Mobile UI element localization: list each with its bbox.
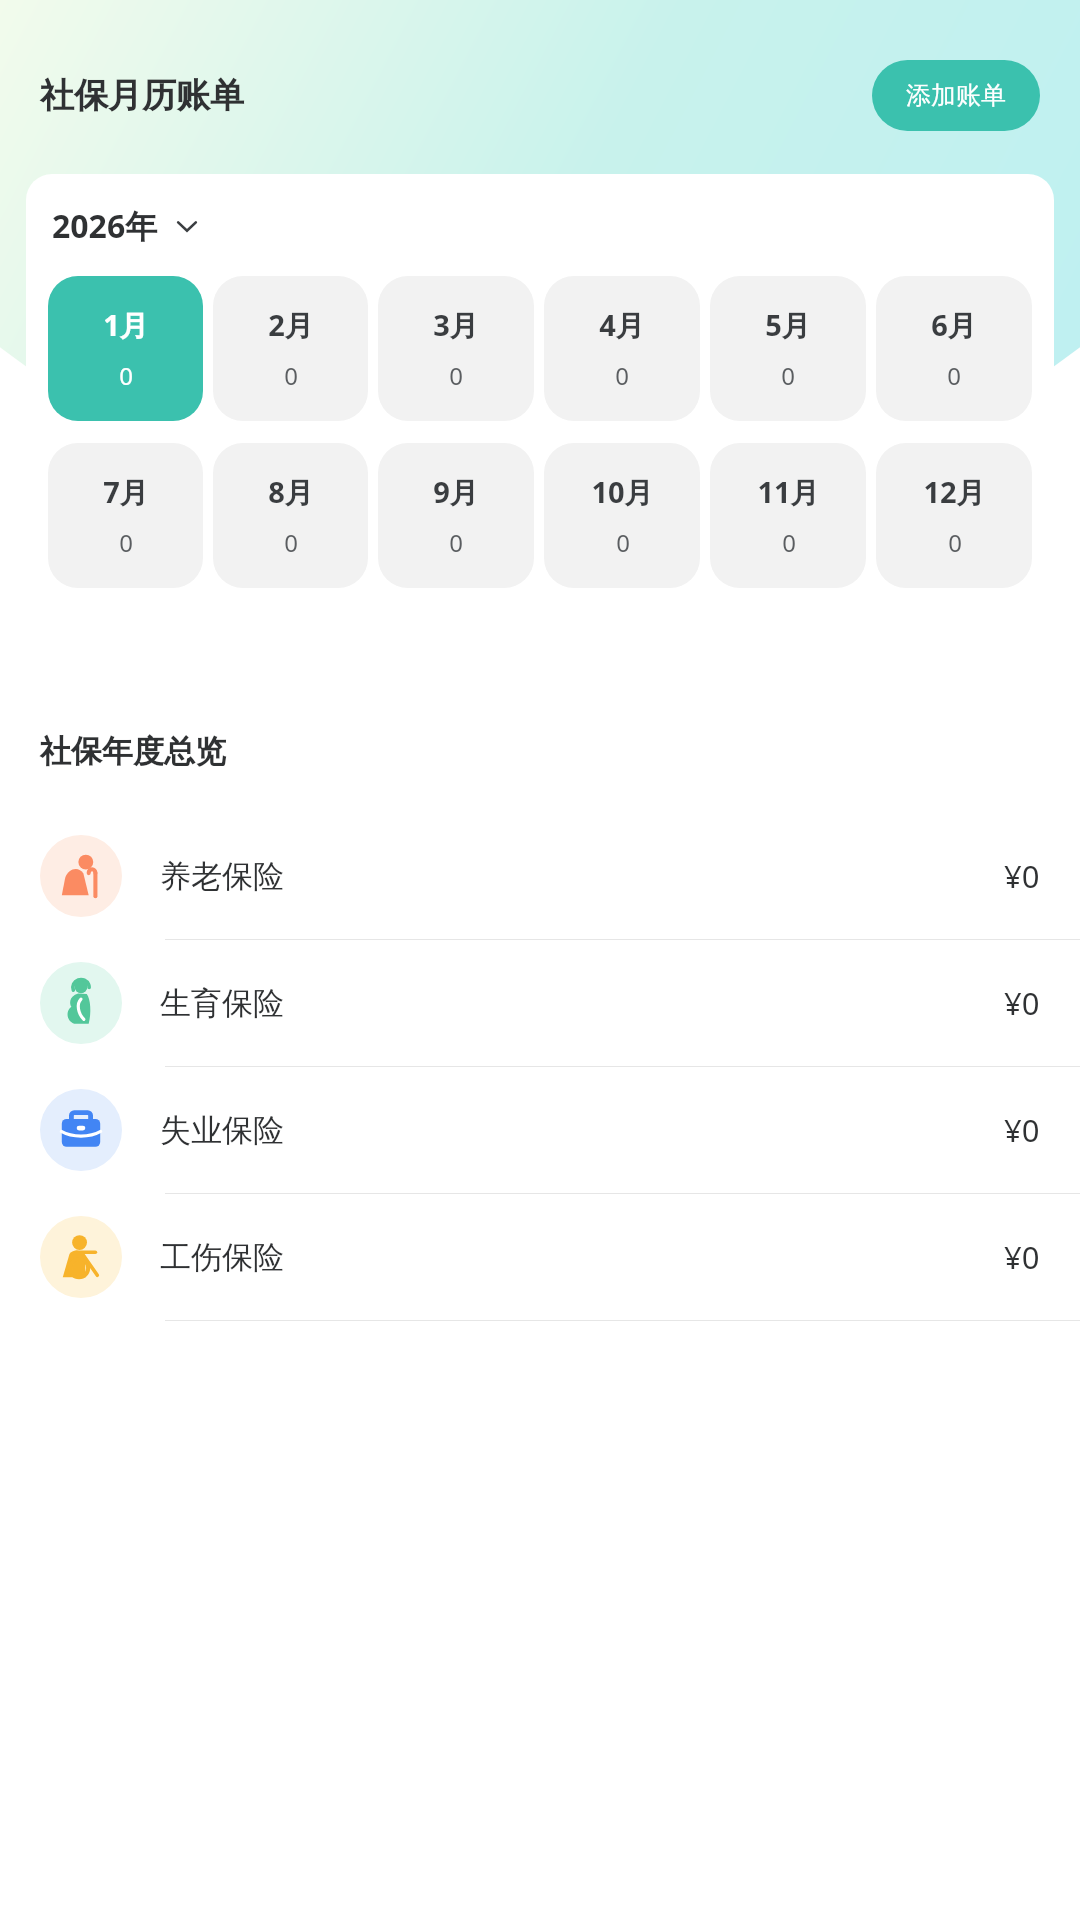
- staticText: 0: [782, 526, 796, 559]
- button[interactable]: 8月: [213, 443, 368, 588]
- staticText: 0: [948, 526, 962, 559]
- button[interactable]: 2026年: [48, 200, 204, 252]
- staticText: 生育保险: [160, 984, 284, 1023]
- button[interactable]: 养老保险: [0, 813, 1080, 939]
- staticText: 0: [449, 359, 463, 392]
- staticText: 0: [119, 526, 133, 559]
- staticText: 0: [615, 359, 629, 392]
- staticText: 工伤保险: [160, 1238, 284, 1277]
- staticText: 6月: [931, 305, 977, 345]
- button[interactable]: 12月: [876, 443, 1032, 588]
- staticText: 0: [616, 526, 630, 559]
- button[interactable]: 11月: [710, 443, 866, 588]
- staticText: 添加账单: [906, 80, 1006, 111]
- button[interactable]: 7月: [48, 443, 203, 588]
- staticText: 9月: [433, 472, 479, 512]
- staticText: 8月: [268, 472, 314, 512]
- staticText: 2月: [268, 305, 314, 345]
- staticText: ¥0: [1004, 855, 1040, 897]
- staticText: 0: [284, 359, 298, 392]
- staticText: 0: [781, 359, 795, 392]
- staticText: 0: [119, 359, 133, 392]
- staticText: 12月: [923, 472, 986, 512]
- staticText: 11月: [757, 472, 820, 512]
- button[interactable]: 3月: [378, 276, 534, 421]
- staticText: 7月: [103, 472, 149, 512]
- staticText: 养老保险: [160, 857, 284, 896]
- button[interactable]: 10月: [544, 443, 700, 588]
- staticText: 3月: [433, 305, 479, 345]
- button[interactable]: 添加账单: [872, 60, 1040, 131]
- staticText: 失业保险: [160, 1111, 284, 1150]
- button[interactable]: 1月: [48, 276, 203, 421]
- button[interactable]: 2月: [213, 276, 368, 421]
- staticText: ¥0: [1004, 1236, 1040, 1278]
- staticText: ¥0: [1004, 1109, 1040, 1151]
- button[interactable]: 5月: [710, 276, 866, 421]
- staticText: 1月: [103, 305, 149, 345]
- staticText: 0: [284, 526, 298, 559]
- staticText: 0: [449, 526, 463, 559]
- staticText: 0: [947, 359, 961, 392]
- staticText: 2026年: [52, 204, 158, 248]
- button[interactable]: 失业保险: [0, 1067, 1080, 1193]
- staticText: ¥0: [1004, 982, 1040, 1024]
- staticText: 4月: [599, 305, 645, 345]
- staticText: 社保年度总览: [40, 732, 226, 771]
- staticText: 社保月历账单: [40, 74, 244, 117]
- staticText: 5月: [765, 305, 811, 345]
- button[interactable]: 4月: [544, 276, 700, 421]
- staticText: 10月: [591, 472, 654, 512]
- button[interactable]: 6月: [876, 276, 1032, 421]
- button[interactable]: 生育保险: [0, 940, 1080, 1066]
- button[interactable]: 9月: [378, 443, 534, 588]
- button[interactable]: 工伤保险: [0, 1194, 1080, 1320]
